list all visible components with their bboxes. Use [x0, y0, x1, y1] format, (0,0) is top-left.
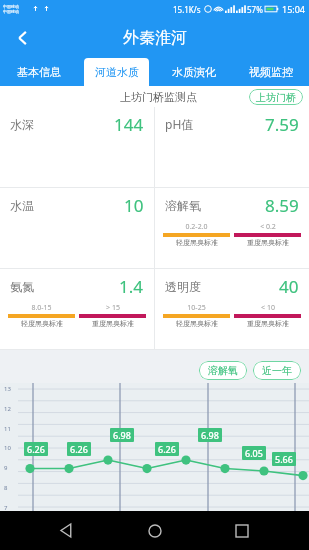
staticText: 上坊门桥监测点: [120, 90, 197, 104]
staticText: 13: [4, 385, 11, 393]
staticText: 外秦淮河: [123, 28, 187, 48]
button[interactable]: 上坊门桥: [256, 89, 296, 105]
staticText: > 15: [106, 303, 120, 313]
button[interactable]: Home: [135, 511, 175, 550]
button[interactable]: 溶解氧: [155, 188, 309, 269]
staticText: 9: [4, 464, 8, 472]
staticText: 近一年: [262, 364, 292, 377]
button[interactable]: Recent apps: [222, 511, 262, 550]
button[interactable]: 透明度: [155, 269, 309, 350]
button[interactable]: 近一年: [262, 361, 292, 380]
button[interactable]: 视频监控: [232, 58, 309, 86]
staticText: 轻度黑臭标准: [21, 319, 63, 328]
staticText: 10: [124, 194, 144, 217]
staticText: < 0.2: [260, 222, 276, 232]
staticText: < 10: [261, 303, 275, 313]
button[interactable]: 氨氮: [0, 269, 154, 350]
staticText: 溶解氧: [165, 198, 201, 213]
staticText: 57%: [247, 4, 263, 15]
staticText: 氨氮: [10, 279, 34, 294]
staticText: 溶解氧: [208, 364, 238, 377]
staticText: 6.05: [245, 447, 263, 459]
staticText: 5.66: [275, 453, 293, 465]
staticText: 10-25: [187, 303, 206, 313]
button[interactable]: 水深: [0, 107, 154, 188]
staticText: 轻度黑臭标准: [176, 319, 218, 328]
staticText: 11: [4, 425, 11, 433]
staticText: 重度黑臭标准: [247, 319, 289, 328]
staticText: 水温: [10, 198, 34, 213]
staticText: 40: [279, 275, 299, 298]
staticText: 中国移动: [3, 4, 19, 9]
staticText: 河道水质: [95, 65, 139, 79]
staticText: 8.0-15: [31, 303, 52, 313]
staticText: 12: [4, 405, 11, 413]
staticText: 重度黑臭标准: [92, 319, 134, 328]
staticText: pH值: [165, 116, 194, 132]
staticText: 中国移动: [3, 9, 19, 14]
staticText: 6.26: [27, 443, 45, 455]
staticText: 1.4: [119, 275, 144, 298]
staticText: 6.26: [70, 443, 88, 455]
staticText: 8: [4, 484, 8, 492]
staticText: 8.59: [265, 194, 299, 217]
button[interactable]: 水温: [0, 188, 154, 269]
button[interactable]: 溶解氧: [208, 361, 238, 380]
staticText: 重度黑臭标准: [247, 238, 289, 247]
staticText: 15.1K/s: [173, 4, 201, 15]
button[interactable]: 水质演化: [155, 58, 232, 86]
staticText: 6.98: [201, 429, 219, 441]
staticText: 6.26: [158, 443, 176, 455]
staticText: 7.59: [265, 113, 299, 136]
button[interactable]: Back: [47, 511, 87, 550]
staticText: 水质演化: [172, 65, 216, 79]
button[interactable]: 河道水质: [84, 58, 149, 86]
staticText: 视频监控: [249, 65, 293, 79]
staticText: 6.98: [113, 429, 131, 441]
staticText: 水深: [10, 117, 34, 132]
staticText: 轻度黑臭标准: [176, 238, 218, 247]
button[interactable]: Back: [6, 21, 40, 55]
button[interactable]: pH值: [155, 107, 309, 188]
staticText: 15:04: [282, 3, 306, 15]
button[interactable]: 基本信息: [0, 58, 78, 86]
staticText: 基本信息: [17, 65, 61, 79]
staticText: 10: [4, 444, 11, 452]
staticText: 透明度: [165, 279, 201, 294]
staticText: 上坊门桥: [256, 91, 296, 104]
staticText: 144: [114, 113, 144, 136]
staticText: 0.2-2.0: [185, 222, 208, 232]
staticText: 7: [4, 504, 8, 512]
